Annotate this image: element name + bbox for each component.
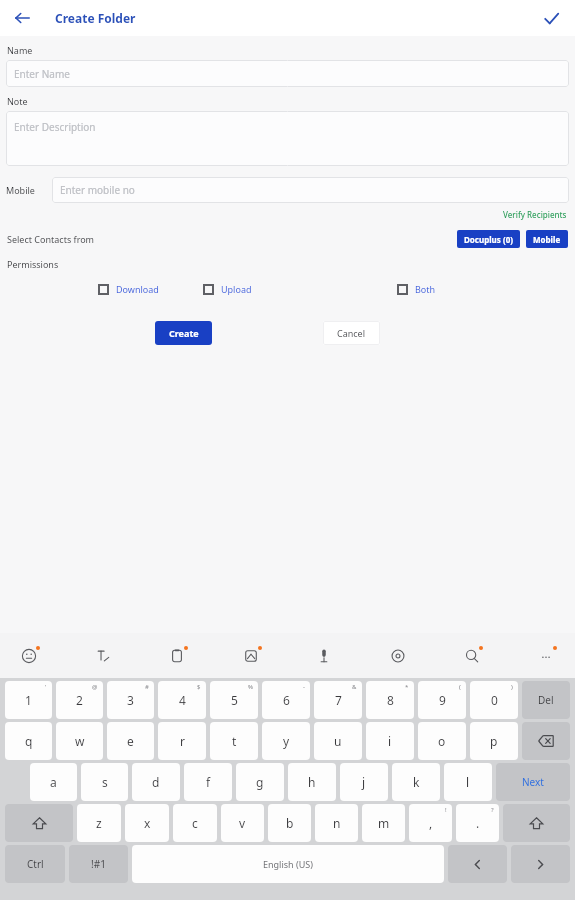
button[interactable]: Next field (511, 845, 570, 883)
button[interactable]: f (184, 763, 232, 801)
button[interactable]: 6 (262, 681, 310, 719)
button[interactable]: 2 (56, 681, 103, 719)
button[interactable]: j (340, 763, 388, 801)
button[interactable]: Cancel (323, 321, 380, 345)
button[interactable]: Sticker (238, 643, 264, 669)
staticText: 9 (439, 692, 446, 708)
staticText: ' (45, 683, 47, 691)
staticText: Upload (221, 283, 252, 295)
button[interactable]: Clipboard (164, 643, 190, 669)
button[interactable]: c (173, 804, 217, 842)
button[interactable]: , (409, 804, 452, 842)
button[interactable]: g (236, 763, 284, 801)
button[interactable]: y (262, 722, 310, 760)
button[interactable]: Enter Description (6, 111, 569, 166)
button[interactable]: b (268, 804, 311, 842)
staticText: j (362, 774, 366, 790)
staticText: & (352, 683, 357, 691)
button[interactable]: u (314, 722, 362, 760)
button[interactable]: w (56, 722, 103, 760)
button[interactable]: n (315, 804, 358, 842)
staticText: Name (7, 44, 33, 56)
button[interactable]: Next (496, 763, 570, 801)
button[interactable]: r (158, 722, 206, 760)
button[interactable]: Search (459, 643, 485, 669)
button[interactable]: !#1 (69, 845, 128, 883)
staticText: !#1 (91, 857, 106, 871)
staticText: Enter Name (14, 67, 70, 81)
button[interactable]: Enter Name (6, 60, 569, 87)
staticText: r (180, 733, 185, 749)
staticText: h (308, 774, 316, 790)
button[interactable]: Previous (448, 845, 507, 883)
button[interactable]: Back (8, 4, 36, 32)
staticText: 7 (335, 692, 342, 708)
staticText: o (438, 733, 446, 749)
button[interactable]: Space (132, 845, 444, 883)
button[interactable]: Settings (385, 643, 411, 669)
button[interactable]: Verify Recipients (503, 209, 567, 220)
button[interactable]: . (456, 804, 499, 842)
staticText: # (145, 683, 149, 691)
staticText: Mobile (6, 184, 35, 196)
staticText: Permissions (7, 258, 59, 270)
button[interactable]: i (366, 722, 414, 760)
button[interactable]: Mobile (526, 230, 568, 248)
button[interactable]: Shift (503, 804, 570, 842)
button[interactable]: 8 (366, 681, 414, 719)
button[interactable]: 3 (107, 681, 154, 719)
button[interactable]: z (77, 804, 121, 842)
button[interactable]: Delete (522, 681, 570, 719)
button[interactable]: h (288, 763, 336, 801)
button[interactable]: l (444, 763, 492, 801)
staticText: Create Folder (55, 10, 136, 26)
staticText: 1 (25, 692, 32, 708)
staticText: Next (522, 775, 544, 789)
button[interactable]: a (30, 763, 77, 801)
button[interactable]: m (362, 804, 405, 842)
staticText: ? (491, 806, 494, 814)
button[interactable]: 5 (210, 681, 258, 719)
button[interactable]: Enter mobile no (52, 177, 569, 203)
button[interactable]: Shift (5, 804, 73, 842)
staticText: m (378, 815, 390, 831)
staticText: y (283, 733, 290, 749)
staticText: e (127, 733, 134, 749)
staticText: 3 (127, 692, 134, 708)
button[interactable]: p (470, 722, 518, 760)
button[interactable]: Emoji (16, 643, 42, 669)
button[interactable]: 0 (470, 681, 518, 719)
staticText: n (333, 815, 341, 831)
button[interactable]: x (125, 804, 169, 842)
button[interactable]: t (210, 722, 258, 760)
staticText: Enter mobile no (60, 183, 135, 197)
button[interactable]: o (418, 722, 466, 760)
button[interactable]: k (392, 763, 440, 801)
button[interactable]: Docuplus (0) (457, 230, 520, 248)
button[interactable]: Download (98, 283, 191, 295)
button[interactable]: 4 (158, 681, 206, 719)
button[interactable]: Text edit (90, 643, 116, 669)
button[interactable]: Voice input (311, 643, 337, 669)
button[interactable]: More (533, 643, 559, 669)
staticText: 6 (283, 692, 290, 708)
staticText: Del (538, 693, 554, 707)
button[interactable]: Backspace (522, 722, 570, 760)
staticText: - (303, 683, 305, 691)
button[interactable]: s (81, 763, 128, 801)
button[interactable]: q (5, 722, 52, 760)
staticText: a (50, 774, 57, 790)
button[interactable]: 1 (5, 681, 52, 719)
button[interactable]: Upload (203, 283, 383, 295)
staticText: Mobile (533, 234, 561, 245)
button[interactable]: d (132, 763, 180, 801)
button[interactable]: Ctrl (5, 845, 65, 883)
button[interactable]: Both (397, 283, 575, 295)
staticText: k (413, 774, 420, 790)
button[interactable]: e (107, 722, 154, 760)
button[interactable]: v (221, 804, 264, 842)
button[interactable]: Done (537, 4, 565, 32)
button[interactable]: 7 (314, 681, 362, 719)
button[interactable]: 9 (418, 681, 466, 719)
button[interactable]: Create (155, 321, 212, 345)
